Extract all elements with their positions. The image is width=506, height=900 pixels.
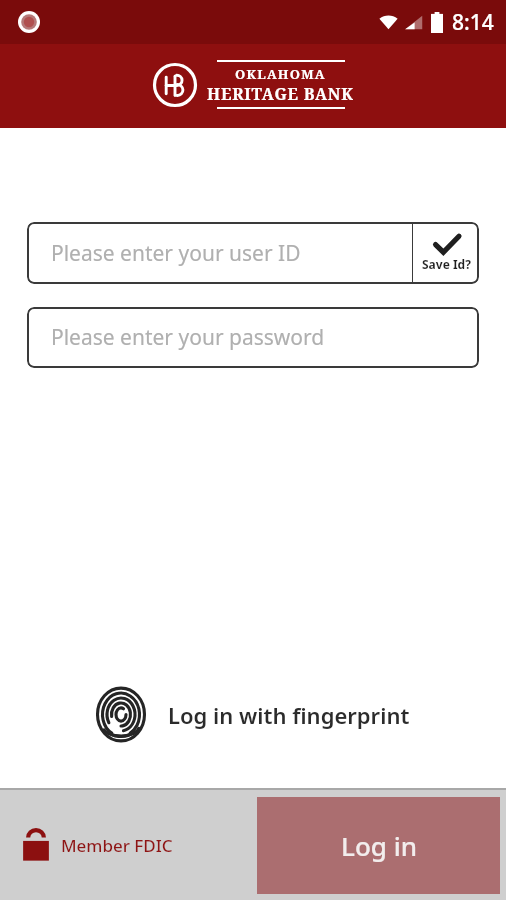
button[interactable]: Log in with fingerprint [84,681,422,748]
staticText: Save Id? [422,256,471,272]
staticText: Log in with fingerprint [168,700,410,730]
staticText: OKLAHOMA [235,65,326,83]
button[interactable]: Save Id [413,222,479,284]
staticText: 8:14 [452,8,494,37]
button[interactable]: Please enter your password [27,307,479,368]
staticText: Please enter your user ID [51,239,301,268]
button[interactable]: Member FDIC [0,820,185,870]
staticText: HERITAGE BANK [207,83,354,105]
staticText: Member FDIC [61,834,173,857]
button[interactable]: Log in [257,797,500,894]
staticText: Log in [341,828,417,863]
staticText: Please enter your password [51,323,325,352]
button[interactable]: Please enter your user ID [27,222,412,284]
